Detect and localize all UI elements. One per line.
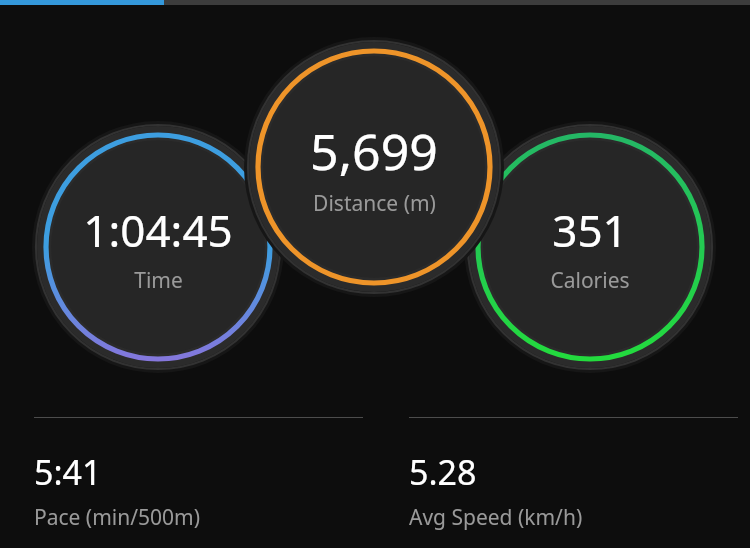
button[interactable]: 5:41: [0, 417, 375, 532]
staticText: Avg Speed (km/h): [409, 503, 583, 532]
staticText: 5:41: [34, 449, 102, 495]
staticText: 1:04:45: [83, 200, 233, 260]
staticText: Calories: [550, 266, 630, 295]
button[interactable]: 5.28: [375, 417, 750, 532]
staticText: 5.28: [409, 449, 477, 495]
button[interactable]: 1:04:45: [38, 127, 278, 367]
staticText: Pace (min/500m): [34, 503, 200, 532]
button[interactable]: 5,699: [248, 41, 500, 293]
staticText: 351: [552, 200, 628, 260]
button[interactable]: 351: [470, 127, 710, 367]
staticText: Time: [134, 266, 183, 295]
staticText: 5,699: [310, 117, 438, 185]
staticText: Distance (m): [313, 189, 436, 218]
